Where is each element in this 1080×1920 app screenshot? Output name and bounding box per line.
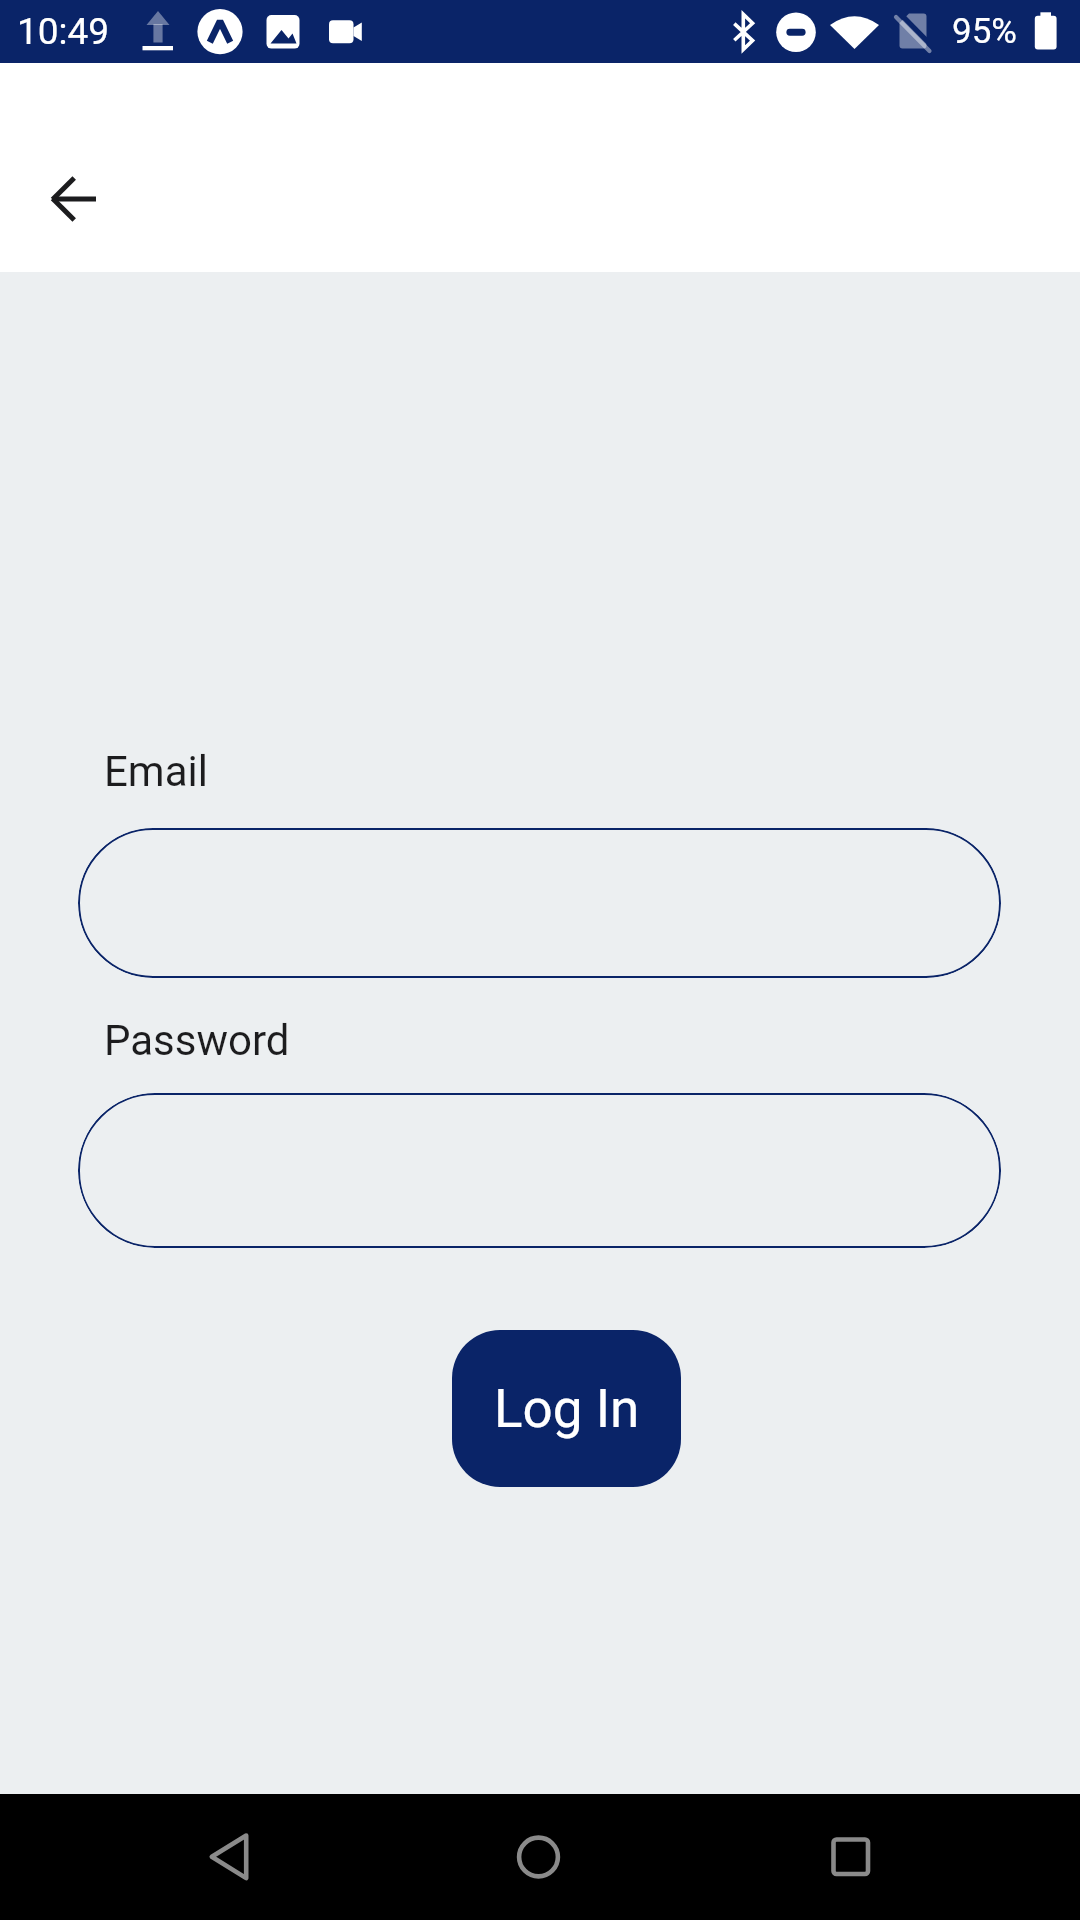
staticText: 95% [952, 11, 1017, 52]
button[interactable] [78, 828, 1001, 978]
staticText: Password [104, 1016, 290, 1065]
button[interactable] [78, 1093, 1001, 1248]
staticText: 10:49 [17, 10, 110, 53]
staticText: Email [104, 747, 208, 796]
button[interactable]: Log In [452, 1330, 681, 1487]
staticText: Log In [494, 1378, 640, 1440]
button[interactable] [802, 1809, 898, 1905]
button[interactable] [26, 151, 122, 247]
button[interactable] [490, 1809, 586, 1905]
button[interactable] [180, 1809, 276, 1905]
